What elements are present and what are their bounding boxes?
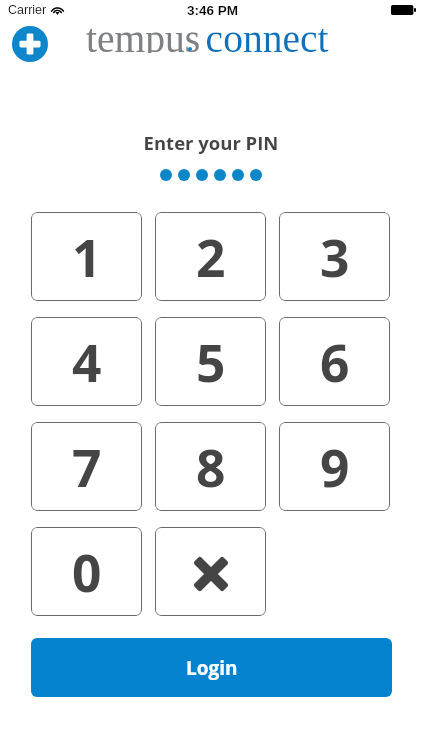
staticText: 0 <box>72 537 102 607</box>
staticText: 1 <box>72 222 102 292</box>
staticText: 7 <box>72 432 102 502</box>
button[interactable]: 5 <box>155 317 266 406</box>
staticText: Login <box>186 655 238 681</box>
button[interactable]: 2 <box>155 212 266 301</box>
staticText: 5 <box>196 327 226 397</box>
staticText: 3 <box>320 222 350 292</box>
staticText: 3:46 PM <box>187 3 239 18</box>
staticText: 8 <box>196 432 226 502</box>
staticText: tempus connect <box>86 17 329 53</box>
button[interactable]: 9 <box>279 422 390 511</box>
button[interactable]: 6 <box>279 317 390 406</box>
button[interactable]: 7 <box>31 422 142 511</box>
other: Tempus Connect logo <box>12 26 48 62</box>
staticText: Carrier <box>8 3 47 17</box>
button[interactable]: 8 <box>155 422 266 511</box>
staticText: Enter your PIN <box>0 130 422 155</box>
staticText: 4 <box>72 327 102 397</box>
staticText: 9 <box>320 432 350 502</box>
button[interactable]: 4 <box>31 317 142 406</box>
button[interactable]: 0 <box>31 527 142 616</box>
button[interactable]: Delete <box>155 527 266 616</box>
staticText: 2 <box>196 222 226 292</box>
other: Wi-Fi signal <box>51 5 64 15</box>
button[interactable]: Login <box>31 638 392 697</box>
button[interactable]: 3 <box>279 212 390 301</box>
staticText: 6 <box>320 327 350 397</box>
other: Battery full <box>391 5 416 15</box>
button[interactable]: 1 <box>31 212 142 301</box>
